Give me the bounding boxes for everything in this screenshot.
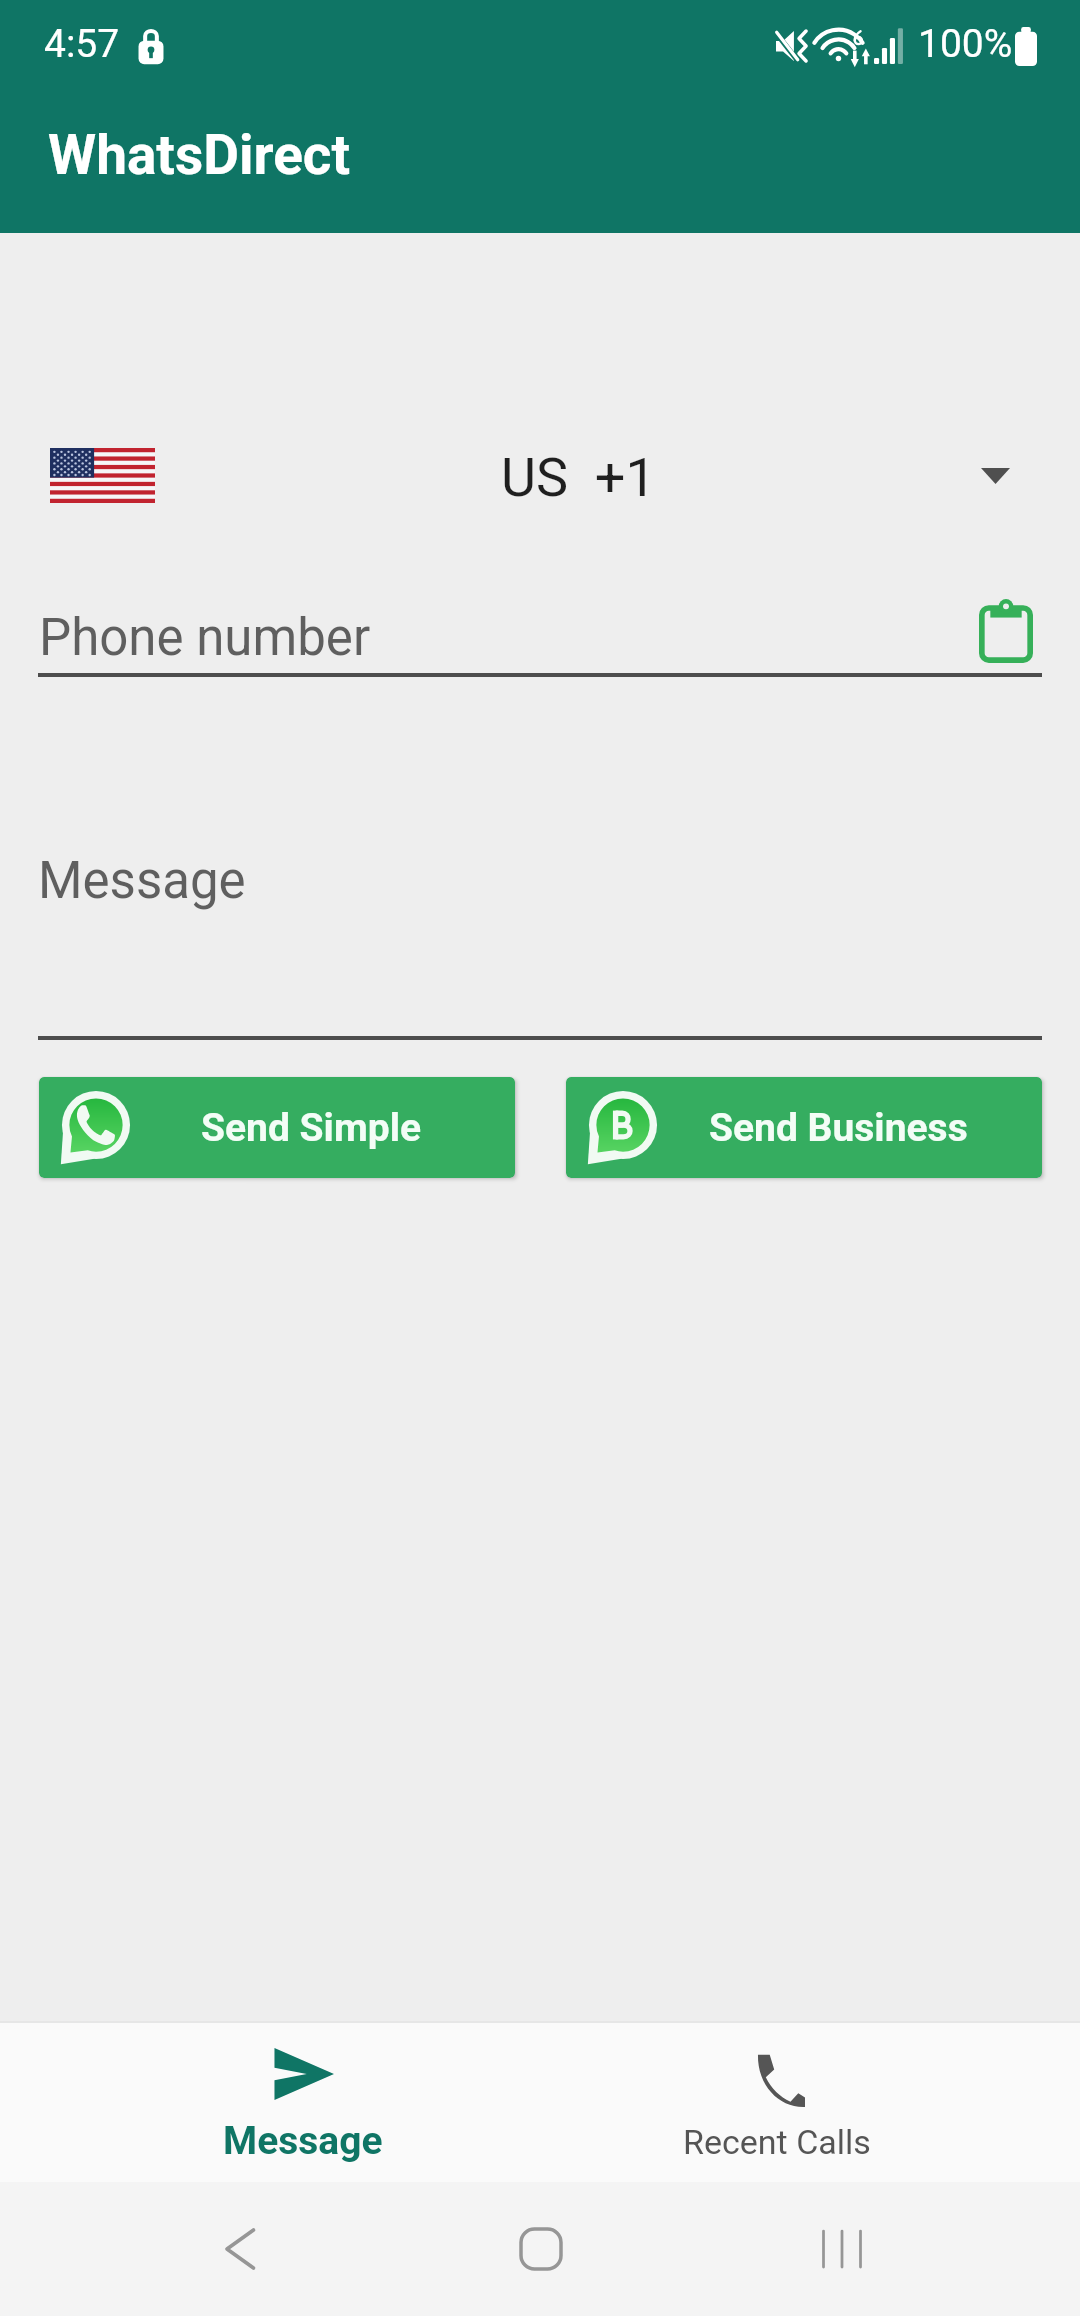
staticText: 100% — [918, 21, 1013, 67]
staticText: WhatsDirect — [48, 123, 351, 187]
other: Recent apps — [817, 2224, 867, 2274]
other: Home — [516, 2224, 566, 2274]
staticText: US +1 — [501, 446, 656, 509]
button[interactable]: Send Business — [566, 1077, 1042, 1178]
staticText: Phone number — [39, 608, 371, 668]
staticText: Recent Calls — [683, 2122, 871, 2162]
staticText: 4:57 — [44, 21, 120, 67]
other: Back — [214, 2224, 264, 2274]
staticText: Send Business — [709, 1105, 968, 1151]
button[interactable]: US +1 — [0, 418, 1080, 530]
button[interactable]: Recent Calls — [540, 2021, 1014, 2182]
button[interactable]: Message — [66, 2021, 540, 2182]
button[interactable]: Paste from clipboard — [975, 593, 1037, 669]
staticText: Send Simple — [201, 1105, 422, 1151]
button[interactable]: Send Simple — [39, 1077, 515, 1178]
staticText: Message — [223, 2118, 383, 2164]
staticText: Message — [38, 851, 246, 911]
